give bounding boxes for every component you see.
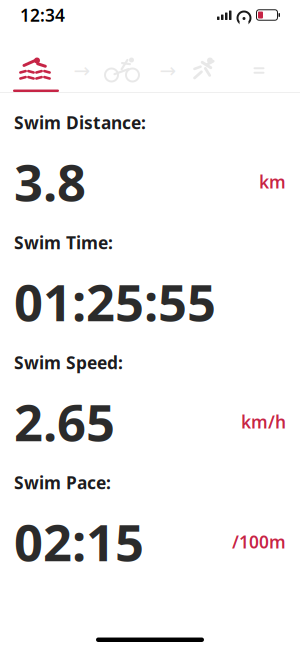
staticText: → — [159, 59, 176, 82]
staticText: Swim Distance: — [14, 111, 146, 134]
staticText: 01:25:55 — [14, 268, 216, 335]
staticText: 02:15 — [14, 508, 144, 575]
staticText: 2.65 — [14, 388, 115, 455]
staticText: km/h — [241, 410, 286, 433]
staticText: Swim Speed: — [14, 351, 123, 374]
staticText: /100m — [232, 530, 286, 553]
staticText: Swim Time: — [14, 231, 113, 254]
staticText: Swim Pace: — [14, 471, 111, 494]
button[interactable]: Bike — [105, 57, 145, 92]
staticText: 3.8 — [14, 148, 86, 215]
button[interactable]: Swim — [13, 57, 59, 92]
staticText: 12:34 — [20, 3, 65, 26]
button[interactable]: Run — [191, 57, 221, 92]
button[interactable]: Total — [242, 57, 276, 92]
staticText: → — [73, 59, 90, 82]
staticText: km — [259, 170, 286, 193]
